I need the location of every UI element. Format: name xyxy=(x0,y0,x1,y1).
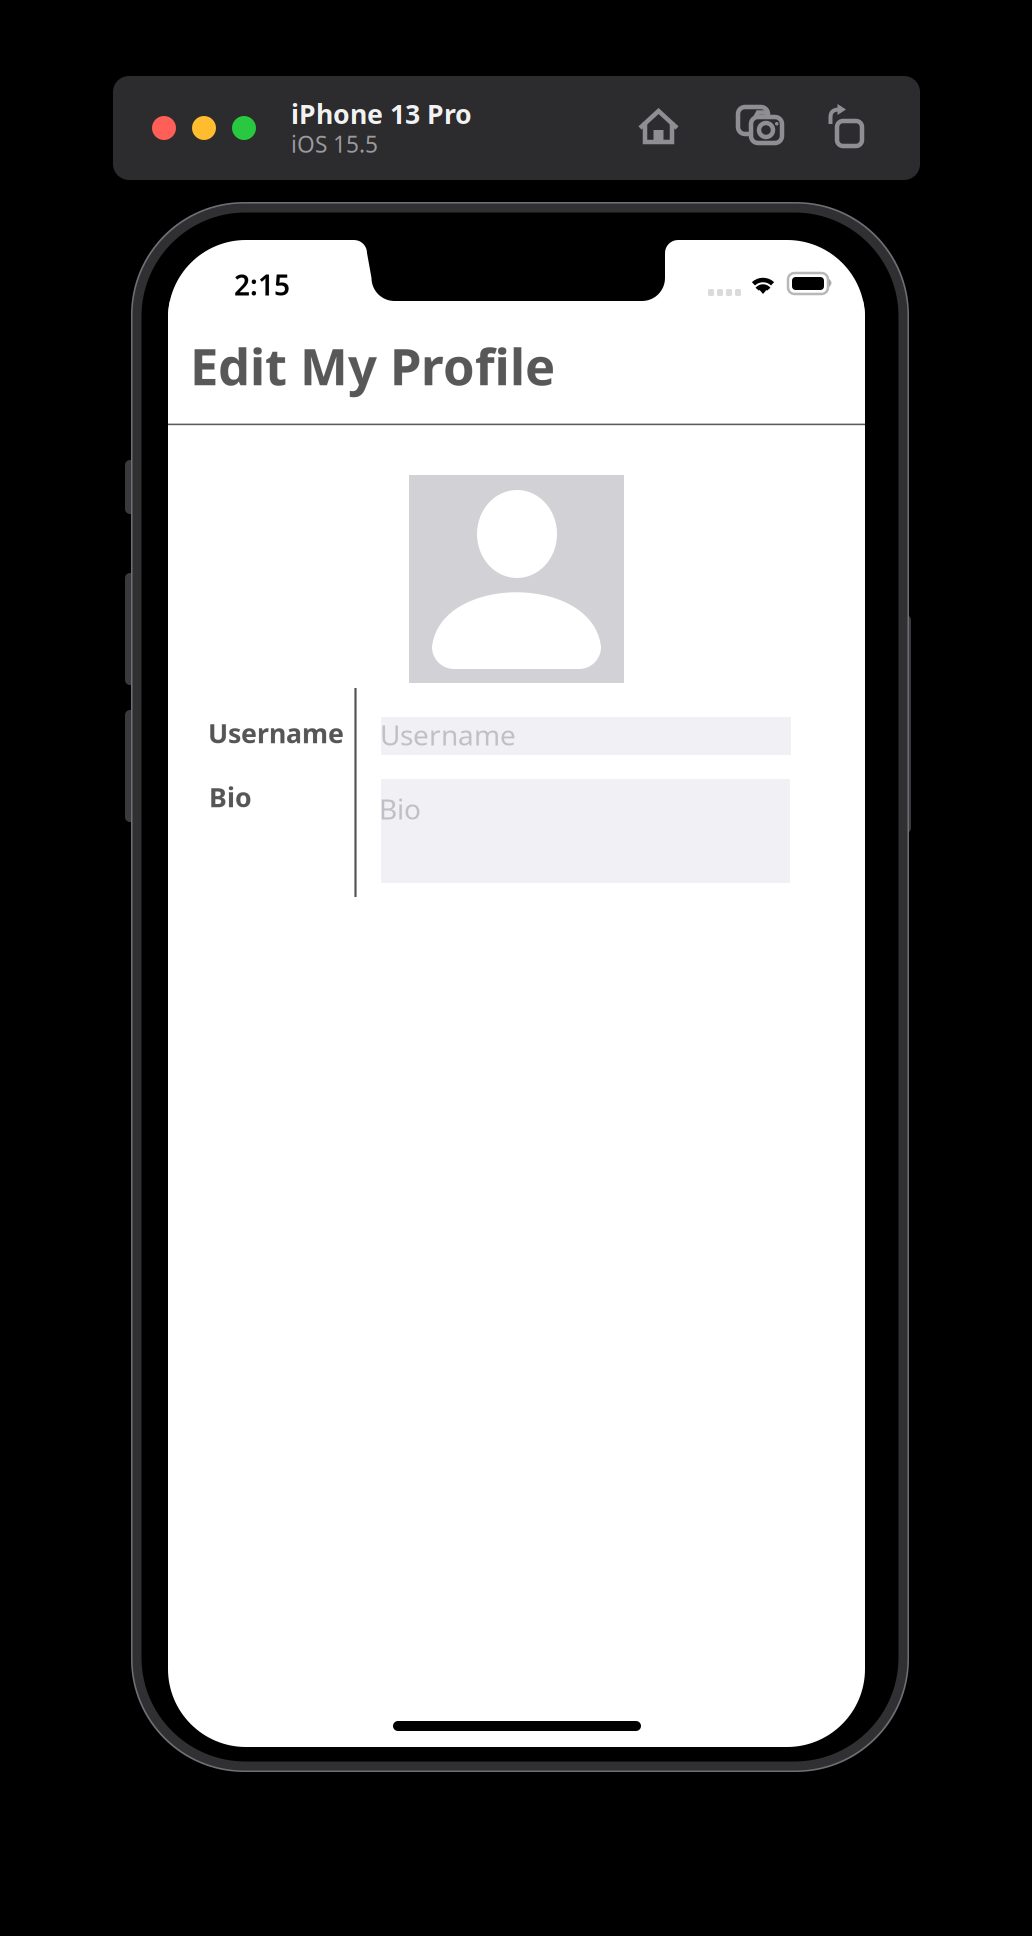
button[interactable]: Close xyxy=(152,116,176,140)
staticText: 2:15 xyxy=(234,266,290,303)
button[interactable]: Bio xyxy=(381,779,790,883)
button[interactable]: Rotate xyxy=(829,103,863,148)
button[interactable]: Screenshot xyxy=(738,106,782,144)
staticText: Username xyxy=(208,715,344,751)
staticText: Bio xyxy=(379,790,421,827)
staticText: Edit My Profile xyxy=(190,332,555,399)
button[interactable]: Zoom xyxy=(232,116,256,140)
button[interactable]: Change profile photo xyxy=(409,475,624,683)
button[interactable]: Username xyxy=(381,717,791,755)
staticText: iOS 15.5 xyxy=(291,129,378,159)
button[interactable]: Minimize xyxy=(192,116,216,140)
staticText: Username xyxy=(380,716,516,753)
staticText: iPhone 13 Pro xyxy=(291,96,472,131)
staticText: Bio xyxy=(209,779,252,815)
button[interactable]: Home xyxy=(639,107,679,144)
